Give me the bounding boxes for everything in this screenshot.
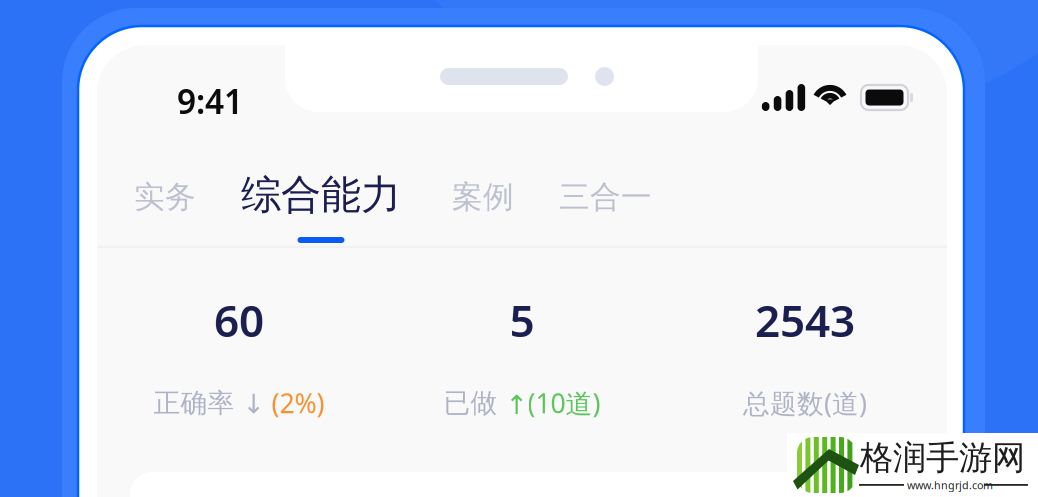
staticText: 总题数(道): [743, 385, 867, 421]
staticText: 5: [509, 291, 534, 349]
button[interactable]: 案例: [440, 173, 526, 221]
staticText: 2543: [755, 291, 855, 349]
staticText: ↑(10道): [505, 385, 600, 421]
staticText: 已做: [443, 387, 505, 419]
staticText: 三合一: [559, 178, 652, 216]
button[interactable]: 实务: [122, 173, 208, 221]
staticText: 正确率 ↓: [153, 387, 264, 419]
button[interactable]: 综合能力: [228, 171, 414, 243]
staticText: 格润手游网: [860, 437, 1025, 478]
staticText: 60: [214, 291, 264, 349]
button[interactable]: 三合一: [547, 173, 664, 221]
staticText: 9:41: [177, 79, 243, 123]
staticText: 综合能力: [241, 170, 401, 219]
staticText: (2%): [264, 385, 324, 421]
staticText: 案例: [452, 178, 514, 216]
staticText: www.hngrjd.com: [907, 478, 993, 492]
staticText: 实务: [134, 178, 196, 216]
